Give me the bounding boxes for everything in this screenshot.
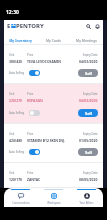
button[interactable]: Notifications <box>93 22 102 31</box>
staticText: Expiry Date <box>83 53 98 57</box>
button[interactable]: Auto selling toggle <box>29 149 40 155</box>
button[interactable]: Auto selling toggle <box>29 70 40 76</box>
staticText: 01/05/2020 <box>79 138 98 143</box>
button[interactable]: Auto selling toggle <box>29 110 40 116</box>
button[interactable]: Sell <box>78 109 98 117</box>
button[interactable]: Sell <box>78 69 98 77</box>
staticText: Sell <box>85 111 92 116</box>
staticText: Price <box>27 92 34 96</box>
staticText: REPAXAN <box>27 98 43 103</box>
staticText: Expiry Date <box>83 171 98 175</box>
button[interactable]: My Cards <box>37 32 70 45</box>
button[interactable]: Conversations <box>4 188 37 207</box>
staticText: 04/03/2020 <box>79 59 98 64</box>
staticText: Price <box>27 132 34 136</box>
staticText: Auto Selling <box>9 71 25 75</box>
staticText: PENTORY <box>16 22 44 30</box>
staticText: Unit <box>9 53 15 57</box>
staticText: 04/02/2020 <box>79 98 98 103</box>
staticText: 120/170 <box>9 177 23 182</box>
staticText: Expiry Date <box>83 132 98 136</box>
button[interactable]: My Meetings <box>70 32 103 45</box>
staticText: Expiry Date <box>83 92 98 96</box>
button[interactable]: My Inventory <box>4 32 37 45</box>
staticText: Workspace <box>47 201 61 205</box>
staticText: Auto Selling <box>9 150 25 154</box>
staticText: Auto Selling <box>9 111 25 115</box>
staticText: VITAMIN B12 SKIN INJ. <box>27 138 65 143</box>
staticText: 380/420 <box>9 59 23 64</box>
staticText: Unit <box>9 171 15 175</box>
staticText: Sell <box>85 150 92 155</box>
staticText: 12:30 <box>6 9 19 16</box>
staticText: 08/05/2020 <box>79 177 98 182</box>
staticText: My Meetings <box>76 38 97 43</box>
staticText: Your Affairs <box>79 201 94 205</box>
staticText: ZANTAC <box>27 177 41 182</box>
button[interactable]: Workspace <box>37 188 70 207</box>
button[interactable]: Search <box>84 22 93 31</box>
staticText: Price <box>27 171 34 175</box>
staticText: Price <box>27 53 34 57</box>
staticText: TEVA LEVOCOSAMIN <box>27 59 62 64</box>
staticText: Unit <box>9 132 15 136</box>
staticText: Conversations <box>12 201 30 205</box>
staticText: 420/480 <box>9 138 23 143</box>
button[interactable]: Your Affairs <box>70 188 103 207</box>
staticText: E <box>7 22 11 30</box>
staticText: 220/270 <box>9 98 23 103</box>
staticText: My Cards <box>46 38 61 43</box>
button[interactable]: Sell <box>78 148 98 156</box>
staticText: Unit <box>9 92 15 96</box>
staticText: Sell <box>85 71 92 76</box>
staticText: My Inventory <box>9 38 32 43</box>
